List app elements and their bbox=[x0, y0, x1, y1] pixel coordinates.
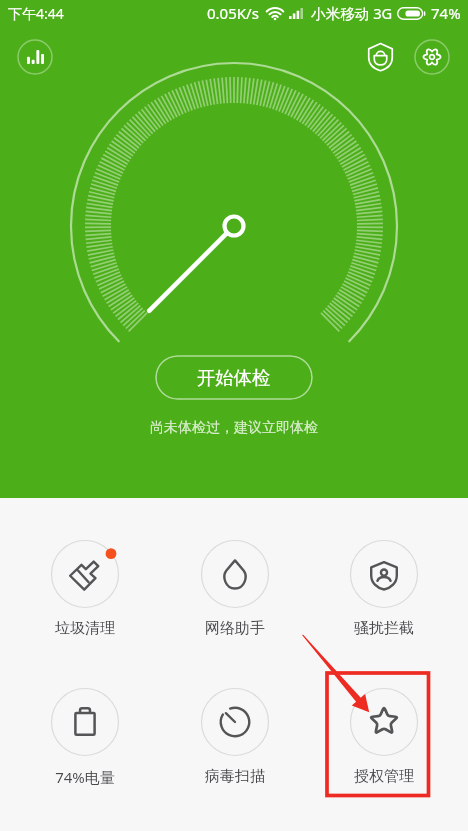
button[interactable]: Settings bbox=[413, 38, 451, 76]
button[interactable]: App lock bbox=[361, 38, 399, 76]
staticText: 0.05K/s bbox=[207, 3, 259, 23]
staticText: 开始体检 bbox=[197, 366, 271, 389]
button[interactable]: 74%电量 bbox=[10, 688, 160, 787]
staticText: 授权管理 bbox=[354, 767, 414, 786]
staticText: 尚未体检过，建议立即体检 bbox=[150, 419, 318, 437]
staticText: 下午4:44 bbox=[8, 4, 64, 23]
button[interactable]: Traffic statistics bbox=[16, 38, 54, 76]
staticText: 74%电量 bbox=[55, 767, 115, 787]
staticText: 网络助手 bbox=[205, 619, 265, 638]
button[interactable]: 骚扰拦截 bbox=[309, 540, 458, 638]
staticText: 小米移动 3G bbox=[311, 3, 393, 23]
staticText: 74% bbox=[431, 3, 461, 23]
button[interactable]: 授权管理 bbox=[309, 688, 458, 786]
staticText: 骚扰拦截 bbox=[354, 619, 414, 638]
staticText: 病毒扫描 bbox=[205, 767, 265, 786]
button[interactable]: 病毒扫描 bbox=[160, 688, 309, 786]
staticText: 垃圾清理 bbox=[55, 619, 115, 638]
button[interactable]: 垃圾清理 bbox=[10, 540, 160, 638]
button[interactable]: 网络助手 bbox=[160, 540, 309, 638]
button[interactable]: 开始体检 bbox=[155, 355, 313, 400]
